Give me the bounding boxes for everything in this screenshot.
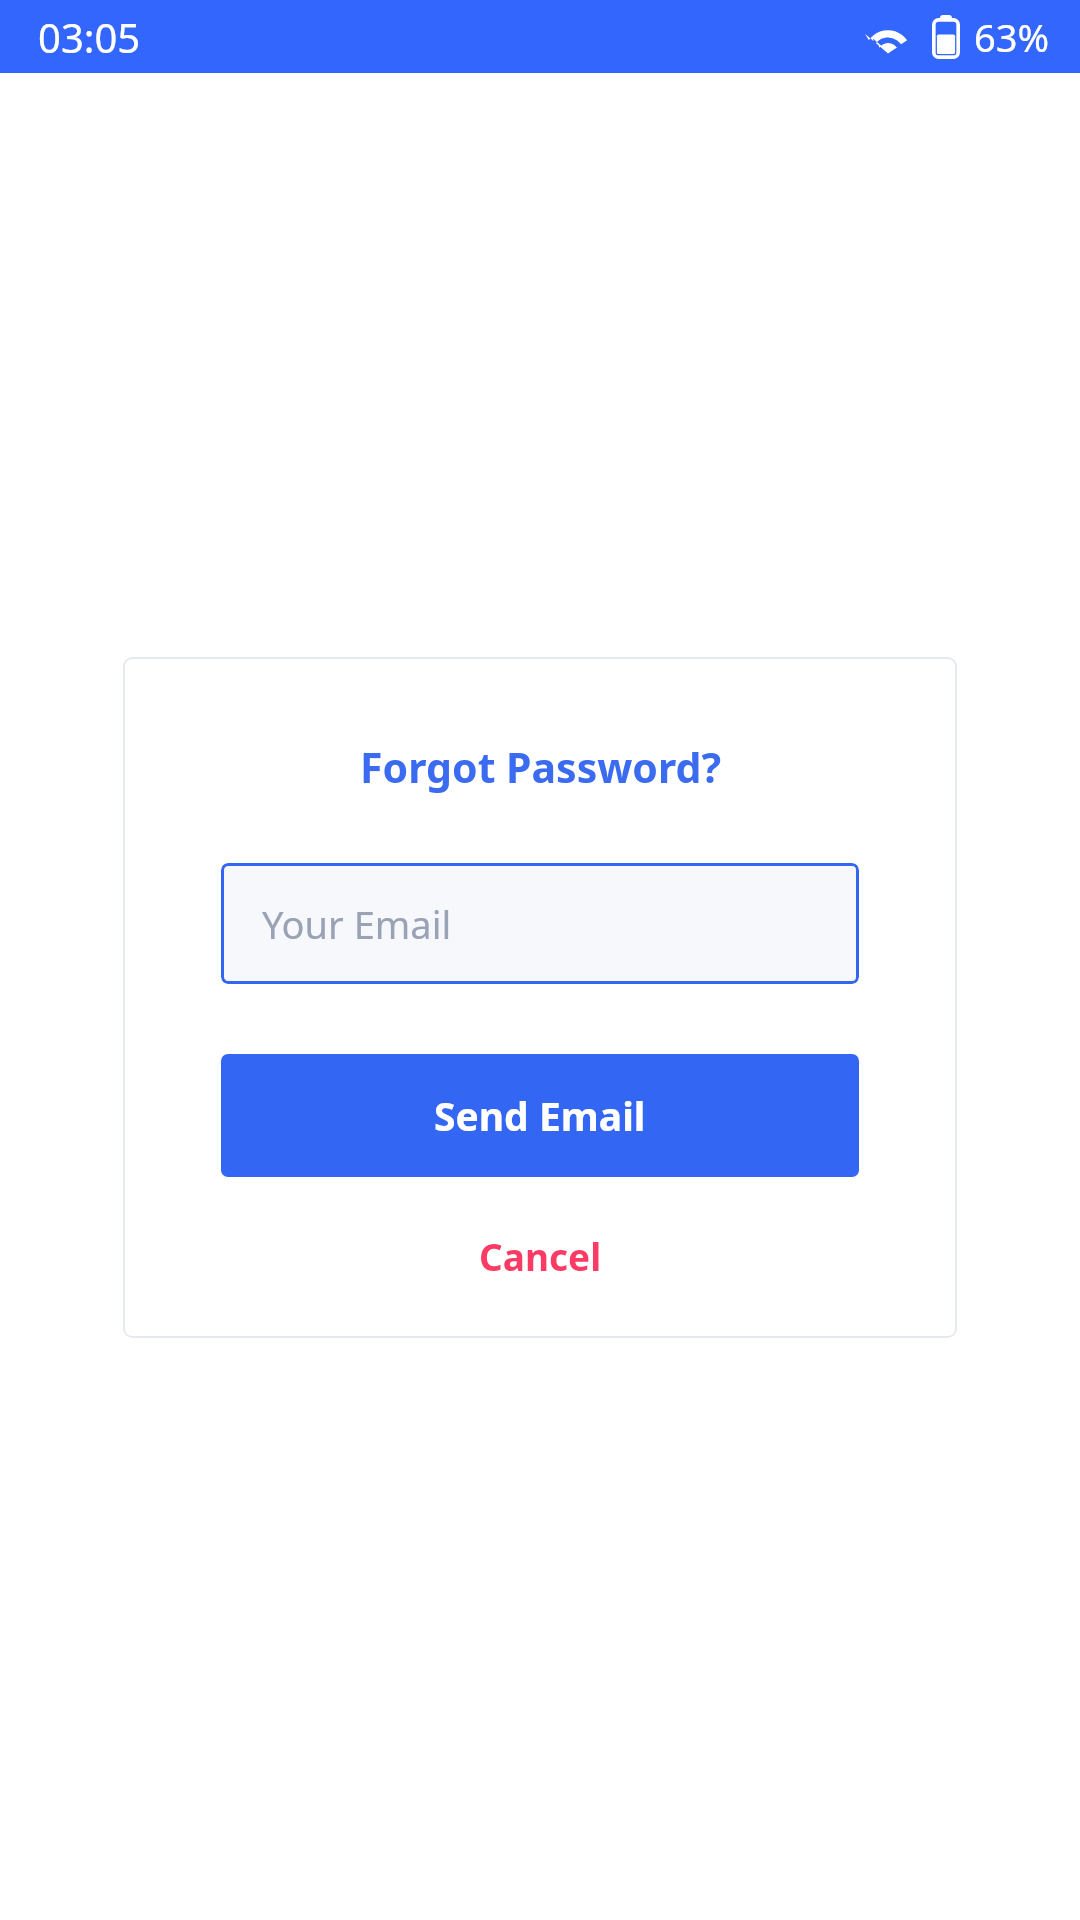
other: Battery 0.63 [932, 15, 960, 59]
staticText: Your Email [262, 898, 452, 950]
other: Wi-Fi [866, 19, 910, 55]
staticText: Cancel [479, 1231, 602, 1281]
staticText: Forgot Password? [360, 739, 721, 795]
staticText: 03:05 [38, 10, 141, 64]
staticText: 63% [974, 11, 1050, 63]
button[interactable]: Send Email [221, 1054, 859, 1177]
button[interactable]: Your Email [221, 863, 859, 984]
staticText: Send Email [434, 1089, 646, 1142]
button[interactable]: Cancel [451, 1225, 630, 1287]
